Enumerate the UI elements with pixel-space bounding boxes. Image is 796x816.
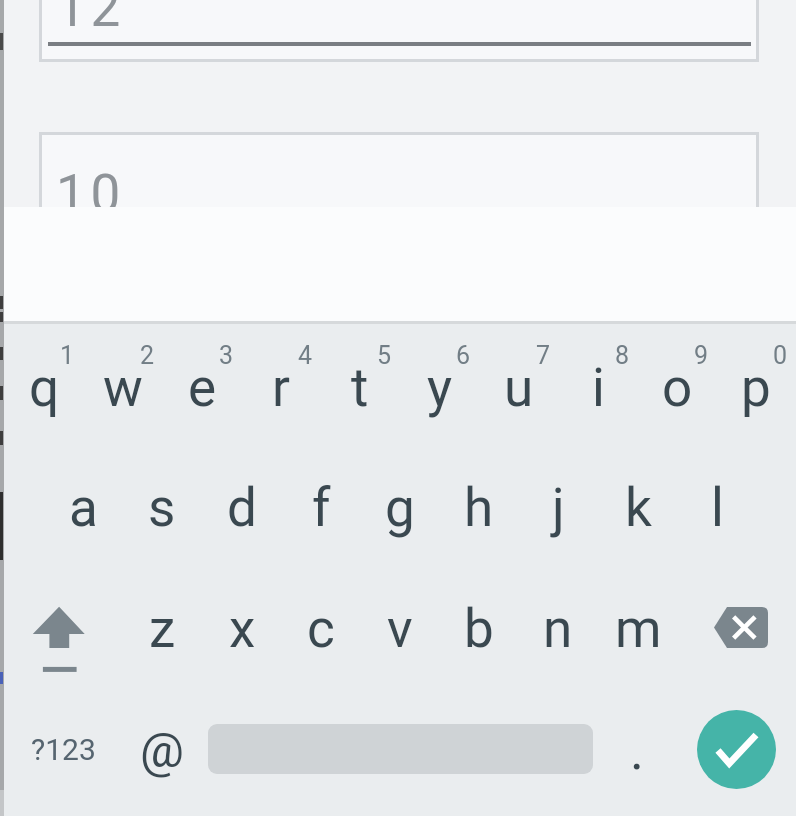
button[interactable] [39,132,759,242]
button[interactable]: q [5,329,83,447]
button[interactable]: u [480,329,558,447]
staticText: f [312,477,331,539]
staticText: q [29,357,60,419]
staticText: 10 [56,163,126,225]
staticText: w [103,357,143,419]
button[interactable]: e [163,329,241,447]
staticText: c [307,598,335,660]
button[interactable]: g [361,449,439,567]
staticText: b [464,598,494,660]
staticText: j [552,477,565,539]
staticText: s [148,477,176,539]
staticText: 6 [456,341,471,365]
button[interactable]: h [440,449,518,567]
button[interactable]: d [203,449,281,567]
button[interactable]: v [361,570,439,688]
staticText: 9 [694,341,709,365]
button[interactable]: b [440,570,518,688]
staticText: o [662,357,693,419]
button[interactable] [697,710,776,789]
button[interactable]: w [84,329,162,447]
staticText: 2 [140,341,155,365]
button[interactable]: n [519,570,597,688]
staticText: g [385,477,415,539]
staticText: 12 [56,0,126,39]
staticText: v [387,598,413,660]
staticText: l [711,477,724,539]
button[interactable]: o [638,329,716,447]
button[interactable]: @ [121,689,203,812]
button[interactable]: p [717,329,795,447]
staticText: @ [140,722,184,779]
button[interactable]: k [599,449,677,567]
staticText: 3 [219,341,234,365]
button[interactable]: f [282,449,360,567]
staticText: e [188,357,217,419]
staticText: 0 [773,341,788,365]
staticText: x [229,598,256,660]
button[interactable]: s [123,449,201,567]
staticText: d [227,477,257,539]
staticText: h [464,477,494,539]
staticText: . [630,720,644,782]
staticText: k [625,477,652,539]
staticText: y [427,357,453,419]
button[interactable]: t [321,329,399,447]
staticText: 5 [377,341,392,365]
button[interactable]: j [519,449,597,567]
button[interactable]: c [282,570,360,688]
staticText: z [149,598,176,660]
button[interactable]: a [44,449,122,567]
staticText: i [592,357,605,419]
button[interactable]: m [599,570,677,688]
staticText: 1 [60,341,75,365]
button[interactable]: x [203,570,281,688]
button[interactable] [0,569,119,692]
staticText: p [741,357,771,419]
button[interactable] [39,0,759,62]
staticText: 8 [615,341,630,365]
button[interactable]: r [242,329,320,447]
button[interactable]: i [559,329,637,447]
staticText: m [615,598,662,660]
button[interactable]: . [607,689,667,812]
button[interactable]: z [123,570,201,688]
staticText: u [504,357,534,419]
staticText: a [69,477,98,539]
staticText: 4 [298,341,313,365]
button[interactable]: l [678,449,756,567]
staticText: ?123 [31,732,96,767]
staticText: n [543,598,573,660]
staticText: t [351,357,369,419]
button[interactable] [677,569,796,692]
staticText: 7 [536,341,551,365]
button[interactable]: ?123 [8,688,118,811]
button[interactable]: y [401,329,479,447]
staticText: r [272,357,290,419]
